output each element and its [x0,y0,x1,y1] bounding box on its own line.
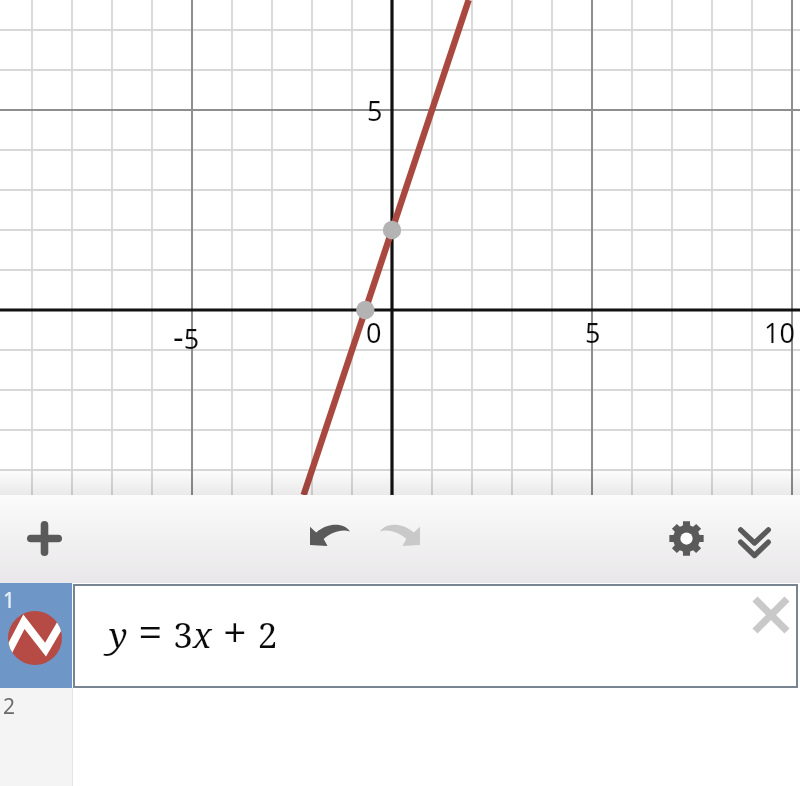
button[interactable]: Collapse [722,503,786,573]
staticText: 2 [3,692,16,721]
button[interactable]: y = 3x + 2 [75,586,796,686]
button[interactable]: Redo [365,500,427,570]
button[interactable]: Add expression [14,508,74,568]
staticText: 10 [764,314,795,351]
staticText: 0 [366,314,382,351]
staticText: y = 3x + 2 [109,601,278,661]
button[interactable]: Delete expression [747,591,795,639]
staticText: 5 [585,314,601,351]
button[interactable]: Settings [654,503,718,573]
button[interactable]: Undo [298,500,360,570]
button[interactable]: 1 [0,583,72,688]
staticText: 1 [3,586,16,615]
staticText: -5 [173,314,200,359]
staticText: 5 [367,92,383,129]
button[interactable]: 2 [0,688,72,786]
